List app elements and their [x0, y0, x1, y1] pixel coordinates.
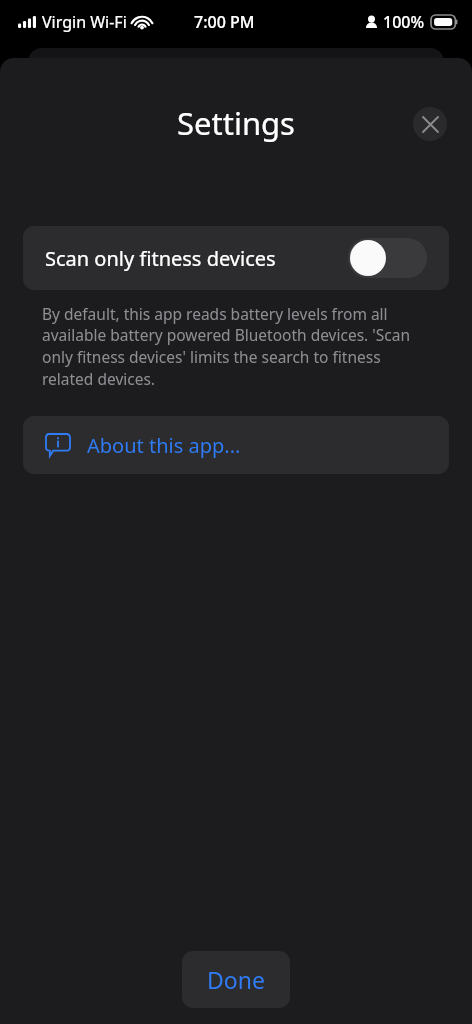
- staticText: 7:00 PM: [194, 11, 255, 33]
- button[interactable]: Scan only fitness devices: [23, 226, 449, 290]
- button[interactable]: Done: [182, 951, 290, 1008]
- button[interactable]: Close: [413, 107, 447, 141]
- staticText: About this app...: [87, 432, 241, 459]
- staticText: Settings: [177, 102, 295, 144]
- staticText: Done: [207, 964, 265, 995]
- staticText: 100%: [383, 11, 425, 33]
- staticText: By default, this app reads battery level…: [42, 303, 430, 390]
- staticText: Virgin Wi-Fi: [42, 11, 127, 33]
- staticText: Scan only fitness devices: [45, 245, 348, 272]
- button[interactable]: About this app...: [23, 416, 449, 474]
